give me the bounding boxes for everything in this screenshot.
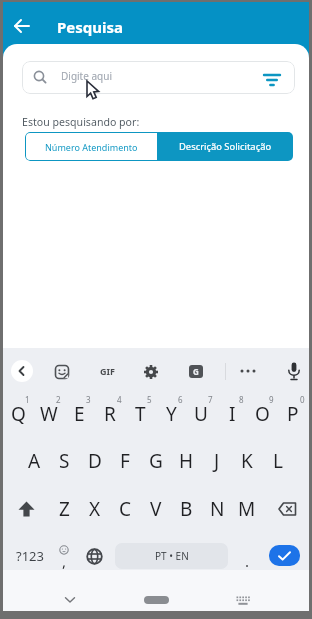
staticText: Estou pesquisando por: xyxy=(22,115,140,129)
button[interactable]: E xyxy=(64,393,94,435)
button[interactable]: A xyxy=(19,440,49,482)
staticText: T xyxy=(135,401,146,427)
staticText: 3 xyxy=(86,394,91,405)
staticText: S xyxy=(59,448,70,474)
button[interactable] xyxy=(142,363,160,381)
staticText: , xyxy=(62,551,67,571)
button[interactable]: M xyxy=(232,488,262,530)
staticText: G xyxy=(193,366,199,377)
staticText: W xyxy=(40,401,58,427)
button[interactable] xyxy=(284,360,304,382)
staticText: M xyxy=(238,496,256,522)
staticText: 5 xyxy=(147,394,152,405)
staticText: X xyxy=(89,496,101,522)
button[interactable]: ?123 xyxy=(12,544,47,568)
button[interactable]: G xyxy=(141,440,171,482)
button[interactable]: H xyxy=(171,440,201,482)
button[interactable] xyxy=(11,494,41,524)
button[interactable]: F xyxy=(110,440,140,482)
staticText: Pesquisa xyxy=(57,17,124,37)
button[interactable]: C xyxy=(110,488,140,530)
button[interactable]: , xyxy=(52,549,77,573)
staticText: U xyxy=(194,401,208,427)
button[interactable] xyxy=(11,360,33,382)
button[interactable] xyxy=(83,544,106,568)
button[interactable]: D xyxy=(80,440,110,482)
staticText: C xyxy=(119,496,132,522)
button[interactable]: V xyxy=(141,488,171,530)
button[interactable]: B xyxy=(171,488,201,530)
button[interactable]: U xyxy=(186,393,216,435)
button[interactable]: Descrição Solicitação xyxy=(158,132,293,161)
button[interactable]: N xyxy=(202,488,232,530)
staticText: 1 xyxy=(25,394,30,405)
button[interactable] xyxy=(53,363,71,381)
button[interactable]: T xyxy=(125,393,155,435)
button[interactable]: Y xyxy=(156,393,186,435)
staticText: B xyxy=(180,496,193,522)
button[interactable] xyxy=(22,61,295,94)
staticText: D xyxy=(88,448,102,474)
button[interactable]: R xyxy=(95,393,125,435)
staticText: . xyxy=(245,551,250,571)
staticText: R xyxy=(104,401,116,427)
staticText: Número Atendimento xyxy=(45,141,138,153)
button[interactable] xyxy=(269,545,300,566)
staticText: K xyxy=(241,448,253,474)
staticText: 7 xyxy=(208,394,213,405)
button[interactable]: O xyxy=(247,393,277,435)
staticText: 4 xyxy=(117,394,122,405)
staticText: PT • EN xyxy=(155,549,189,563)
button[interactable]: I xyxy=(217,393,247,435)
button[interactable]: J xyxy=(202,440,232,482)
button[interactable]: L xyxy=(263,440,293,482)
staticText: V xyxy=(150,496,162,522)
staticText: L xyxy=(273,448,283,474)
staticText: O xyxy=(255,401,270,427)
button[interactable]: PT • EN xyxy=(115,543,228,569)
button[interactable]: Número Atendimento xyxy=(25,132,158,161)
button[interactable]: P xyxy=(278,393,308,435)
staticText: GIF xyxy=(100,365,115,377)
staticText: G xyxy=(149,448,163,474)
button[interactable]: K xyxy=(232,440,262,482)
button[interactable] xyxy=(233,592,253,610)
button[interactable]: Z xyxy=(49,488,79,530)
staticText: 6 xyxy=(178,394,183,405)
button[interactable] xyxy=(9,13,35,39)
staticText: Z xyxy=(59,496,70,522)
button[interactable]: GIF xyxy=(93,362,121,380)
staticText: A xyxy=(28,448,41,474)
staticText: Y xyxy=(166,401,177,427)
staticText: E xyxy=(74,401,85,427)
button[interactable]: X xyxy=(80,488,110,530)
staticText: 0 xyxy=(300,394,305,405)
staticText: ?123 xyxy=(16,547,44,565)
staticText: H xyxy=(179,448,194,474)
button[interactable] xyxy=(60,590,80,610)
staticText: F xyxy=(120,448,130,474)
button[interactable]: W xyxy=(34,393,64,435)
staticText: 2 xyxy=(56,394,61,405)
staticText: P xyxy=(287,401,299,427)
staticText: Q xyxy=(11,401,26,427)
staticText: J xyxy=(214,448,220,474)
staticText: 8 xyxy=(239,394,244,405)
button[interactable]: Q xyxy=(3,393,33,435)
button[interactable] xyxy=(144,596,169,604)
staticText: I xyxy=(229,401,236,427)
staticText: N xyxy=(210,496,225,522)
button[interactable]: G xyxy=(187,362,205,380)
button[interactable]: S xyxy=(49,440,79,482)
button[interactable]: . xyxy=(236,549,259,573)
staticText: 9 xyxy=(269,394,274,405)
staticText: Digite aqui xyxy=(61,69,112,83)
button[interactable] xyxy=(272,495,302,523)
button[interactable] xyxy=(236,362,260,380)
staticText: Descrição Solicitação xyxy=(179,140,272,153)
